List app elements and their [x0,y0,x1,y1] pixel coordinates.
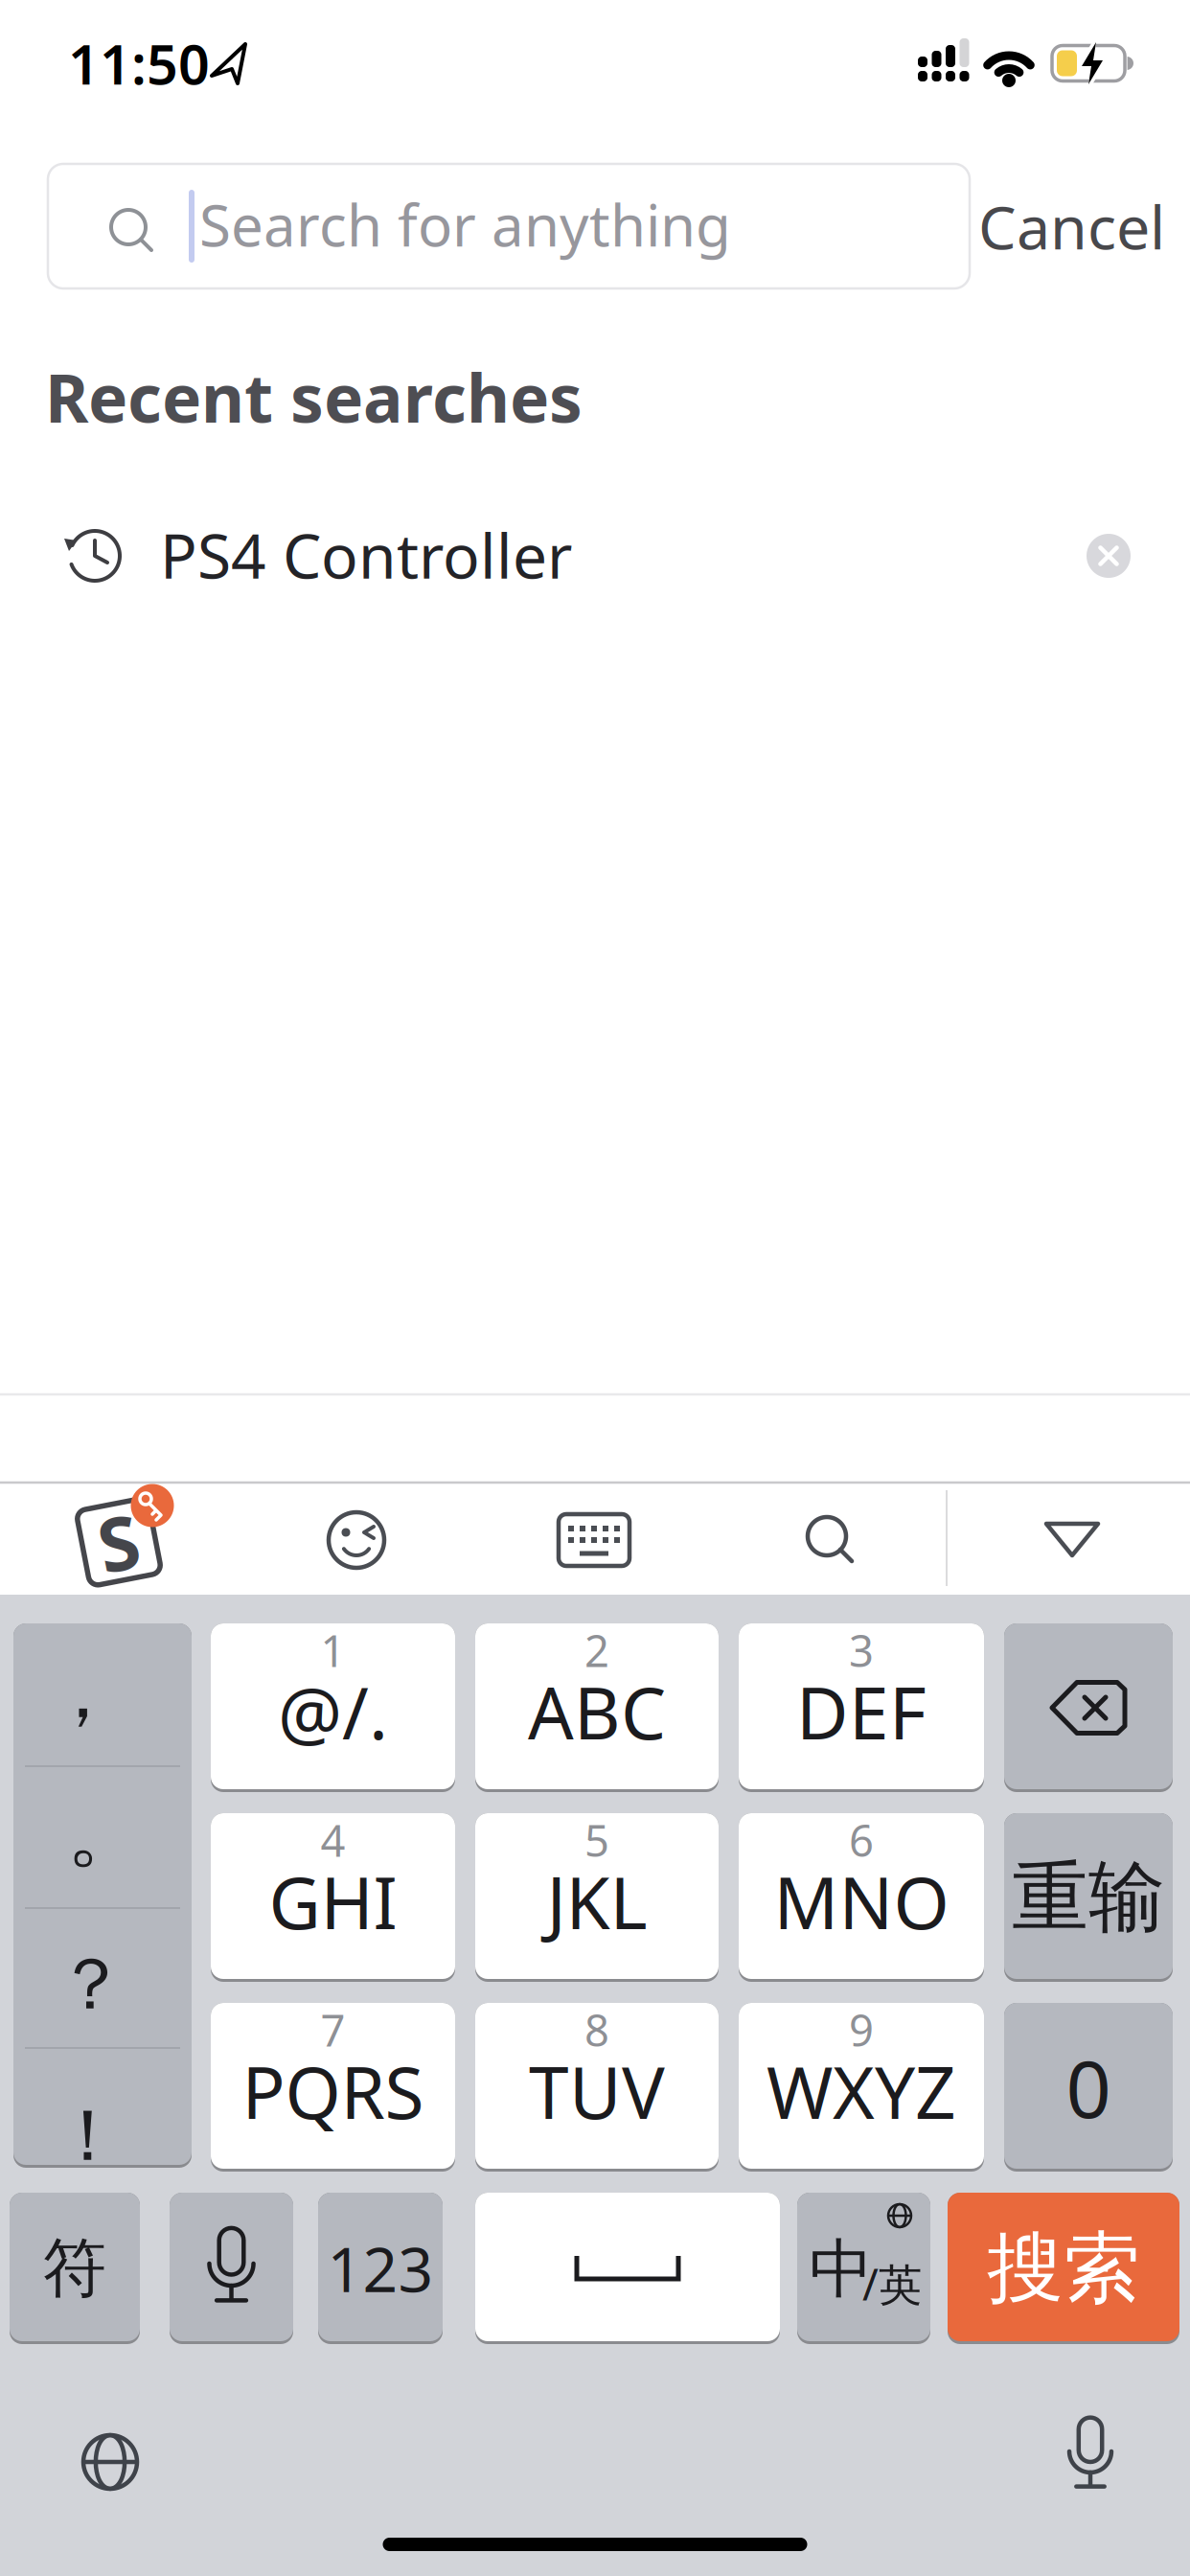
staticText: 0 [1066,2035,1111,2140]
button[interactable]: 5 [475,1813,719,1982]
staticText: 1 [320,1621,345,1679]
button[interactable]: 符 [10,2193,140,2344]
button[interactable] [475,2193,780,2344]
staticText: 2 [584,1621,609,1679]
staticText: S [98,1493,139,1591]
button[interactable]: 7 [211,2003,455,2172]
staticText: JKL [547,1854,647,1949]
button[interactable] [551,1506,637,1574]
button[interactable] [792,1502,869,1578]
button[interactable]: 123 [318,2193,443,2344]
staticText: 搜索 [987,2221,1140,2316]
button[interactable]: 8 [475,2003,719,2172]
staticText: ！ [52,2092,124,2180]
staticText: PS4 Controller [160,514,572,596]
staticText: Search for anything [199,186,731,262]
staticText: GHI [269,1854,397,1949]
staticText: 重输 [1012,1850,1165,1945]
staticText: 8 [584,2001,609,2059]
staticText: 。 [67,1784,146,1881]
button[interactable]: 6 [739,1813,984,1982]
button[interactable]: 2 [475,1623,719,1792]
button[interactable]: 0 [1004,2003,1173,2172]
button[interactable] [1004,1623,1173,1792]
button[interactable] [1034,1500,1110,1576]
staticText: 符 [43,2229,107,2308]
button[interactable] [170,2193,293,2344]
staticText: 7 [320,2001,345,2059]
staticText: ABC [528,1664,666,1759]
staticText: 4 [320,1811,345,1869]
button[interactable]: PS4 Controller [0,498,1190,613]
button[interactable]: ， [13,1623,192,2168]
staticText: @/. [278,1664,388,1759]
staticText: 11:50 [68,27,210,100]
button[interactable]: 搜索 [948,2193,1179,2344]
button[interactable]: Cancel [878,186,1165,266]
staticText: ， [46,1647,119,1738]
button[interactable]: Search for anything [48,164,970,288]
staticText: TUV [529,2044,665,2139]
staticText: DEF [796,1664,927,1759]
staticText: 6 [849,1811,874,1869]
staticText: /英 [862,2255,922,2313]
staticText: 9 [849,2001,874,2059]
staticText: WXYZ [767,2044,956,2139]
staticText: Cancel [978,186,1165,266]
button[interactable]: 3 [739,1623,984,1792]
staticText: 中 [809,2230,873,2309]
staticText: 5 [584,1811,609,1869]
button[interactable]: S [62,1486,177,1594]
button[interactable]: 4 [211,1813,455,1982]
staticText: 3 [849,1621,874,1679]
button[interactable]: 9 [739,2003,984,2172]
button[interactable] [1058,2408,1123,2495]
staticText: MNO [774,1854,949,1949]
button[interactable]: 1 [211,1623,455,1792]
button[interactable] [1087,534,1131,578]
button[interactable]: 重输 [1004,1813,1173,1982]
staticText: PQRS [242,2044,424,2139]
staticText: 123 [327,2228,434,2309]
button[interactable] [72,2424,149,2500]
button[interactable]: 中 [797,2193,930,2344]
staticText: Recent searches [45,353,583,441]
button[interactable] [318,1502,395,1578]
staticText: ？ [55,1941,127,2029]
